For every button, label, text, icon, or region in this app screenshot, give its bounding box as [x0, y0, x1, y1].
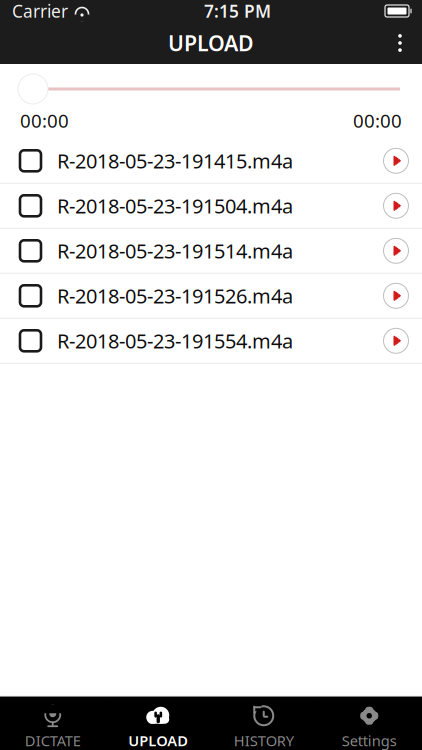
- button[interactable]: HISTORY: [211, 697, 316, 750]
- button[interactable]: More options: [378, 22, 422, 64]
- staticText: 00:00: [353, 108, 402, 133]
- staticText: DICTATE: [25, 731, 81, 750]
- button[interactable]: DICTATE: [0, 697, 105, 750]
- staticText: HISTORY: [234, 731, 294, 750]
- staticText: 00:00: [20, 108, 69, 133]
- button[interactable]: R-2018-05-23-191526.m4a: [0, 274, 422, 319]
- button[interactable]: R-2018-05-23-191415.m4a: [0, 139, 422, 184]
- staticText: UPLOAD: [128, 731, 188, 750]
- button[interactable]: Settings: [316, 697, 422, 750]
- staticText: UPLOAD: [168, 29, 254, 57]
- staticText: R-2018-05-23-191514.m4a: [57, 237, 293, 264]
- staticText: R-2018-05-23-191554.m4a: [57, 327, 293, 354]
- button[interactable]: R-2018-05-23-191554.m4a: [0, 319, 422, 364]
- button[interactable]: UPLOAD: [105, 697, 211, 750]
- staticText: Carrier: [12, 0, 68, 22]
- staticText: R-2018-05-23-191526.m4a: [57, 282, 293, 309]
- button[interactable]: R-2018-05-23-191504.m4a: [0, 184, 422, 229]
- button[interactable]: R-2018-05-23-191514.m4a: [0, 229, 422, 274]
- staticText: R-2018-05-23-191504.m4a: [57, 192, 293, 219]
- staticText: 7:15 PM: [204, 0, 271, 22]
- staticText: Settings: [342, 731, 397, 750]
- staticText: R-2018-05-23-191415.m4a: [57, 147, 293, 174]
